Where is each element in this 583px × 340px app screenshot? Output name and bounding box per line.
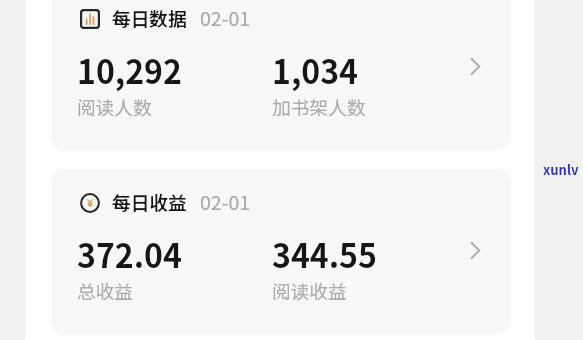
staticText: 372.04: [77, 231, 182, 277]
staticText: 阅读收益: [272, 277, 347, 304]
staticText: 每日数据: [112, 4, 187, 31]
staticText: 总收益: [77, 277, 134, 304]
staticText: xunlv: [543, 160, 579, 179]
button[interactable]: 每日数据: [51, 0, 511, 150]
staticText: 1,034: [272, 47, 358, 93]
staticText: 344.55: [272, 231, 377, 277]
button[interactable]: 每日收益: [51, 169, 511, 334]
button[interactable]: More details: [460, 235, 490, 265]
button[interactable]: More details: [460, 51, 490, 81]
staticText: 每日收益: [112, 188, 187, 215]
staticText: 02-01: [200, 187, 251, 215]
staticText: 10,292: [77, 47, 182, 93]
staticText: 阅读人数: [77, 93, 152, 120]
staticText: 加书架人数: [272, 93, 366, 120]
staticText: 02-01: [200, 3, 251, 31]
